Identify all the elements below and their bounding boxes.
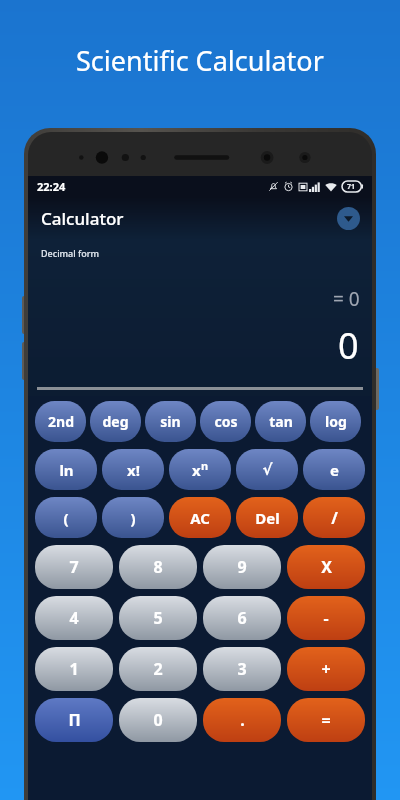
- button[interactable]: 0: [119, 698, 197, 742]
- staticText: 22:24: [37, 179, 66, 194]
- staticText: Decimal form: [41, 247, 100, 259]
- button[interactable]: log: [310, 401, 361, 442]
- staticText: (: [63, 508, 69, 528]
- button[interactable]: sin: [145, 401, 196, 442]
- button[interactable]: 2: [119, 647, 197, 691]
- staticText: 0: [153, 709, 163, 731]
- button[interactable]: X: [287, 545, 365, 589]
- staticText: 4: [69, 607, 79, 629]
- staticText: .: [240, 709, 245, 731]
- button[interactable]: 8: [119, 545, 197, 589]
- button[interactable]: +: [287, 647, 365, 691]
- button[interactable]: .: [203, 698, 281, 742]
- button[interactable]: x: [169, 449, 231, 490]
- button[interactable]: 1: [35, 647, 113, 691]
- button[interactable]: 3: [203, 647, 281, 691]
- staticText: /: [331, 507, 338, 529]
- button[interactable]: deg: [90, 401, 141, 442]
- staticText: 2: [153, 658, 163, 680]
- button[interactable]: 4: [35, 596, 113, 640]
- staticText: 3: [237, 658, 247, 680]
- button[interactable]: e: [303, 449, 365, 490]
- button[interactable]: =: [287, 698, 365, 742]
- button[interactable]: 5: [119, 596, 197, 640]
- button[interactable]: x!: [102, 449, 164, 490]
- staticText: +: [321, 658, 331, 680]
- staticText: 9: [237, 556, 247, 578]
- button[interactable]: AC: [169, 497, 231, 538]
- button[interactable]: 7: [35, 545, 113, 589]
- button[interactable]: √: [236, 449, 298, 490]
- button[interactable]: cos: [200, 401, 251, 442]
- staticText: Scientific Calculator: [76, 42, 324, 79]
- button[interactable]: 2nd: [35, 401, 86, 442]
- button[interactable]: (: [35, 497, 97, 538]
- staticText: Del: [255, 508, 280, 528]
- staticText: tan: [269, 412, 293, 431]
- staticText: deg: [102, 412, 129, 431]
- staticText: x!: [127, 460, 140, 480]
- staticText: ln: [59, 460, 74, 480]
- button[interactable]: Del: [236, 497, 298, 538]
- staticText: x: [192, 460, 201, 480]
- staticText: 71: [347, 182, 356, 192]
- button[interactable]: 9: [203, 545, 281, 589]
- staticText: П: [68, 709, 81, 731]
- staticText: 8: [153, 556, 163, 578]
- staticText: e: [330, 460, 339, 480]
- staticText: 6: [237, 607, 247, 629]
- staticText: -: [323, 607, 329, 629]
- button[interactable]: More options: [337, 207, 360, 230]
- staticText: 0: [338, 321, 359, 370]
- button[interactable]: -: [287, 596, 365, 640]
- staticText: cos: [214, 412, 238, 431]
- button[interactable]: tan: [255, 401, 306, 442]
- button[interactable]: ): [102, 497, 164, 538]
- button[interactable]: П: [35, 698, 113, 742]
- staticText: 7: [69, 556, 79, 578]
- staticText: AC: [190, 508, 210, 528]
- staticText: = 0: [333, 286, 360, 312]
- staticText: 2nd: [48, 412, 74, 431]
- staticText: 5: [153, 607, 163, 629]
- button[interactable]: 6: [203, 596, 281, 640]
- staticText: n: [201, 458, 209, 473]
- staticText: Calculator: [41, 207, 124, 230]
- staticText: ): [130, 508, 136, 528]
- staticText: 1: [69, 658, 79, 680]
- button[interactable]: /: [303, 497, 365, 538]
- staticText: =: [321, 709, 331, 731]
- staticText: sin: [160, 412, 181, 431]
- staticText: √: [262, 461, 273, 478]
- staticText: X: [321, 556, 332, 578]
- button[interactable]: ln: [35, 449, 97, 490]
- staticText: log: [325, 412, 347, 431]
